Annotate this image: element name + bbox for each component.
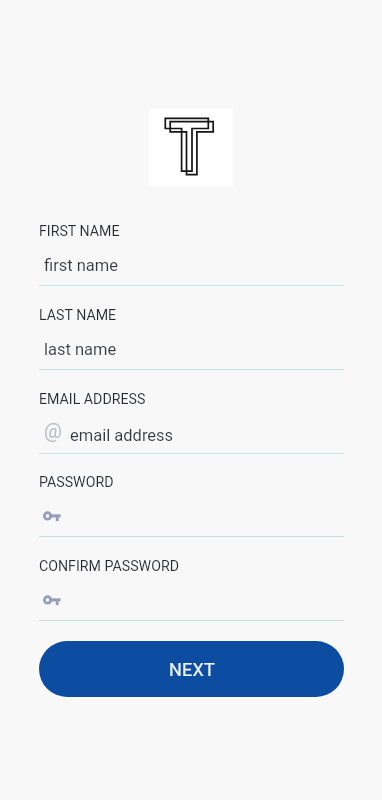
button[interactable] [39, 468, 344, 538]
staticText: LAST NAME [39, 307, 117, 324]
staticText: CONFIRM PASSWORD [39, 558, 179, 575]
staticText: FIRST NAME [39, 223, 120, 240]
staticText: EMAIL ADDRESS [39, 391, 146, 408]
button[interactable]: NEXT [39, 641, 344, 697]
other: Confirm password [43, 595, 60, 606]
other: Password [43, 511, 60, 522]
button[interactable] [39, 385, 344, 455]
button[interactable] [39, 217, 344, 287]
button[interactable] [39, 301, 344, 371]
staticText: first name [44, 256, 119, 275]
button[interactable] [39, 552, 344, 622]
staticText: @ [44, 419, 62, 442]
staticText: last name [44, 340, 117, 359]
button[interactable]: App logo [149, 109, 233, 186]
staticText: PASSWORD [39, 474, 114, 491]
staticText: email address [70, 426, 174, 445]
staticText: NEXT [169, 659, 215, 680]
